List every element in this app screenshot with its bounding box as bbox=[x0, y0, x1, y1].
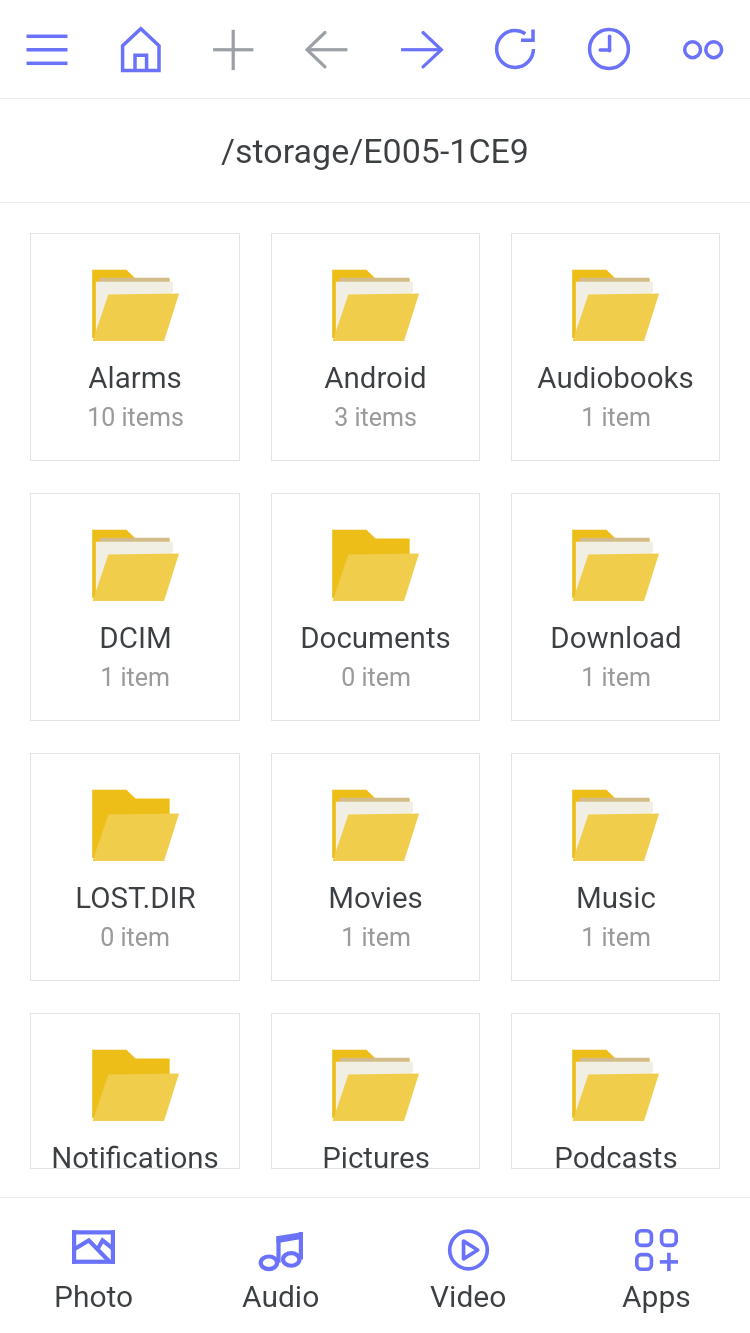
staticText: 1 item bbox=[100, 663, 170, 692]
button[interactable]: Download bbox=[511, 493, 720, 721]
button[interactable]: Notifications bbox=[30, 1013, 240, 1169]
button[interactable]: Movies bbox=[271, 753, 480, 981]
staticText: Documents bbox=[300, 621, 451, 656]
staticText: 1 item bbox=[581, 923, 651, 952]
staticText: 0 item bbox=[100, 923, 170, 952]
staticText: Audio bbox=[242, 1279, 320, 1314]
staticText: Audiobooks bbox=[537, 361, 694, 396]
staticText: Video bbox=[430, 1279, 507, 1314]
button[interactable]: Android bbox=[271, 233, 480, 461]
button[interactable]: Audiobooks bbox=[511, 233, 720, 461]
staticText: /storage/E005-1CE9 bbox=[221, 131, 529, 171]
button[interactable]: Menu bbox=[0, 0, 93, 98]
staticText: Apps bbox=[622, 1279, 691, 1314]
staticText: Movies bbox=[328, 881, 423, 916]
staticText: Notifications bbox=[51, 1141, 219, 1169]
button[interactable]: Photo bbox=[0, 1198, 187, 1333]
button[interactable]: DCIM bbox=[30, 493, 240, 721]
staticText: Download bbox=[550, 621, 682, 656]
button[interactable]: Documents bbox=[271, 493, 480, 721]
staticText: 0 item bbox=[341, 663, 411, 692]
staticText: Podcasts bbox=[554, 1141, 678, 1169]
button[interactable]: Music bbox=[511, 753, 720, 981]
button[interactable]: Add bbox=[186, 0, 280, 98]
button[interactable]: Refresh bbox=[468, 0, 562, 98]
button[interactable]: Alarms bbox=[30, 233, 240, 461]
staticText: Pictures bbox=[322, 1141, 430, 1169]
button[interactable]: Audio bbox=[187, 1198, 374, 1333]
staticText: Music bbox=[576, 881, 656, 916]
button[interactable]: Back bbox=[280, 0, 374, 98]
staticText: 10 items bbox=[87, 403, 184, 432]
button[interactable]: Apps bbox=[562, 1198, 750, 1333]
staticText: 1 item bbox=[581, 663, 651, 692]
button[interactable]: Select all bbox=[656, 0, 750, 98]
button[interactable]: Pictures bbox=[271, 1013, 480, 1169]
button[interactable]: Home bbox=[93, 0, 186, 98]
staticText: 3 items bbox=[334, 403, 417, 432]
button[interactable]: Video bbox=[374, 1198, 562, 1333]
button[interactable]: History bbox=[562, 0, 656, 98]
button[interactable]: LOST.DIR bbox=[30, 753, 240, 981]
staticText: Android bbox=[324, 361, 427, 396]
staticText: Photo bbox=[54, 1279, 134, 1314]
staticText: 1 item bbox=[341, 923, 411, 952]
staticText: Alarms bbox=[88, 361, 182, 396]
staticText: LOST.DIR bbox=[75, 881, 196, 916]
staticText: 1 item bbox=[581, 403, 651, 432]
button[interactable]: Forward bbox=[374, 0, 468, 98]
staticText: DCIM bbox=[99, 621, 172, 656]
button[interactable]: Podcasts bbox=[511, 1013, 720, 1169]
